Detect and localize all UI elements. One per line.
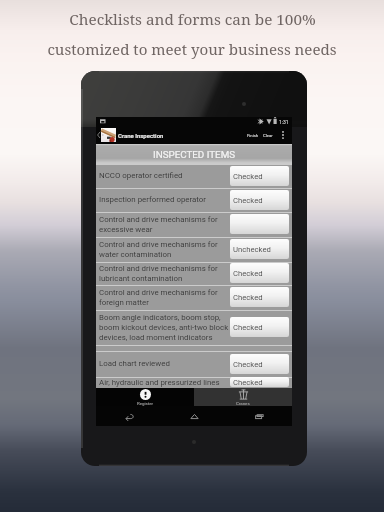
staticText: 1:31 — [279, 119, 289, 125]
button[interactable]: Cranes — [194, 388, 292, 406]
staticText: Checklists and forms can be 100% — [69, 9, 316, 30]
staticText: Control and drive mechanisms for lubrica… — [99, 264, 229, 283]
staticText: Checked — [233, 378, 263, 387]
staticText: Checked — [233, 196, 263, 205]
button[interactable]: Back — [96, 406, 162, 426]
staticText: Checked — [233, 360, 263, 369]
staticText: Checked — [233, 293, 263, 302]
button[interactable]: Load chart reviewed — [96, 352, 292, 377]
staticText: Checked — [233, 269, 263, 278]
staticText: INSPECTED ITEMS — [153, 149, 236, 160]
button[interactable]: Recent apps — [227, 406, 292, 426]
staticText: Control and drive mechanisms for excessi… — [99, 215, 229, 234]
staticText: Clear — [263, 133, 273, 138]
button[interactable]: Finish — [245, 128, 261, 143]
staticText: Unchecked — [233, 245, 271, 254]
button[interactable]: Control and drive mechanisms for excessi… — [96, 213, 292, 237]
staticText: Control and drive mechanisms for water c… — [99, 240, 229, 259]
staticText: Control and drive mechanisms for foreign… — [99, 288, 229, 307]
button[interactable]: Air, hydraulic and pressurized lines — [96, 378, 292, 388]
button[interactable]: NCCO operator certified — [96, 165, 292, 188]
staticText: Checked — [233, 172, 263, 181]
button[interactable]: Inspection performed operator — [96, 189, 292, 212]
button[interactable]: Control and drive mechanisms for foreign… — [96, 286, 292, 310]
staticText: Crane Inspection — [118, 132, 164, 139]
button[interactable]: Boom angle indicators, boom stop, boom k… — [96, 311, 292, 345]
staticText: Load chart reviewed — [99, 359, 229, 368]
staticText: Register — [137, 401, 154, 406]
staticText: NCCO operator certified — [99, 171, 229, 180]
button[interactable]: Control and drive mechanisms for water c… — [96, 238, 292, 262]
button[interactable]: Clear — [261, 128, 275, 143]
staticText: Finish — [247, 133, 259, 138]
staticText: Boom angle indicators, boom stop, boom k… — [99, 313, 229, 342]
button[interactable]: Control and drive mechanisms for lubrica… — [96, 263, 292, 285]
button[interactable]: More options — [275, 126, 291, 144]
staticText: customized to meet your business needs — [47, 39, 337, 60]
button[interactable]: Home — [162, 406, 227, 426]
staticText: Cranes — [236, 401, 250, 406]
staticText: Inspection performed operator — [99, 195, 229, 204]
button[interactable]: Register — [96, 388, 194, 406]
staticText: Air, hydraulic and pressurized lines — [99, 378, 229, 387]
staticText: Checked — [233, 323, 263, 332]
